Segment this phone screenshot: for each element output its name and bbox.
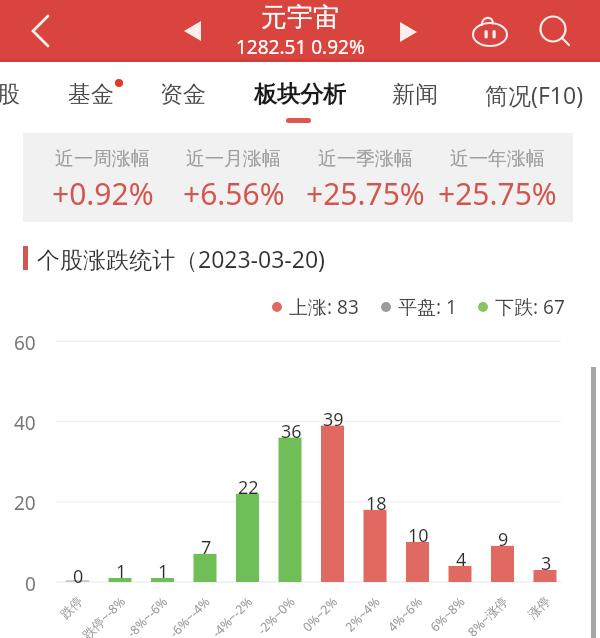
staticText: +0.92%: [52, 173, 154, 214]
staticText: 板块分析: [254, 80, 346, 109]
staticText: 资金: [160, 80, 206, 109]
staticText: 近一季涨幅: [318, 147, 413, 171]
button[interactable]: 上涨: 83: [272, 294, 359, 320]
staticText: 0: [73, 564, 84, 586]
staticText: 基金: [68, 80, 114, 109]
staticText: 近一周涨幅: [55, 147, 150, 171]
staticText: 10: [408, 523, 429, 545]
staticText: 新闻: [392, 80, 438, 109]
staticText: 1: [158, 559, 169, 581]
button[interactable]: 简况(F10): [477, 62, 591, 135]
staticText: 0: [25, 571, 36, 595]
button[interactable]: 平盘: 1: [381, 294, 457, 320]
button[interactable]: 近一季涨幅: [299, 139, 431, 222]
button[interactable]: 股: [0, 62, 41, 135]
button[interactable]: Next sector: [390, 14, 426, 50]
button[interactable]: 板块分析: [248, 62, 352, 135]
staticText: 元宇宙: [261, 1, 339, 31]
staticText: 1: [116, 559, 127, 581]
staticText: 3: [541, 551, 552, 573]
staticText: 近一月涨幅: [186, 147, 281, 171]
staticText: 4: [456, 547, 467, 569]
staticText: 1282.51 0.92%: [236, 34, 365, 56]
button[interactable]: 下跌: 67: [478, 294, 565, 320]
staticText: 平盘: 1: [398, 294, 457, 320]
staticText: 9: [498, 527, 509, 549]
staticText: 下跌: 67: [495, 294, 565, 320]
button[interactable]: 近一年涨幅: [431, 139, 563, 222]
staticText: +6.56%: [183, 173, 285, 214]
staticText: 40: [14, 410, 36, 434]
staticText: 简况(F10): [485, 79, 584, 110]
staticText: 个股涨跌统计（2023-03-20): [37, 243, 325, 274]
button[interactable]: 基金: [58, 62, 124, 135]
button[interactable]: AI assistant: [468, 14, 512, 58]
button[interactable]: 新闻: [382, 62, 448, 135]
staticText: +25.75%: [438, 173, 557, 214]
button[interactable]: 近一周涨幅: [37, 139, 168, 222]
button[interactable]: Back: [20, 9, 64, 53]
staticText: 股: [0, 80, 20, 109]
staticText: 36: [281, 419, 302, 441]
staticText: 22: [238, 475, 259, 497]
staticText: 20: [14, 490, 36, 514]
staticText: 60: [14, 330, 36, 354]
staticText: 上涨: 83: [289, 294, 359, 320]
button[interactable]: Search: [532, 8, 576, 52]
staticText: 18: [366, 491, 387, 513]
staticText: 7: [201, 535, 212, 557]
button[interactable]: 近一月涨幅: [168, 139, 299, 222]
staticText: 39: [323, 407, 344, 429]
button[interactable]: 资金: [150, 62, 216, 135]
button[interactable]: Previous sector: [174, 13, 210, 49]
staticText: +25.75%: [306, 173, 425, 214]
staticText: 近一年涨幅: [450, 147, 545, 171]
